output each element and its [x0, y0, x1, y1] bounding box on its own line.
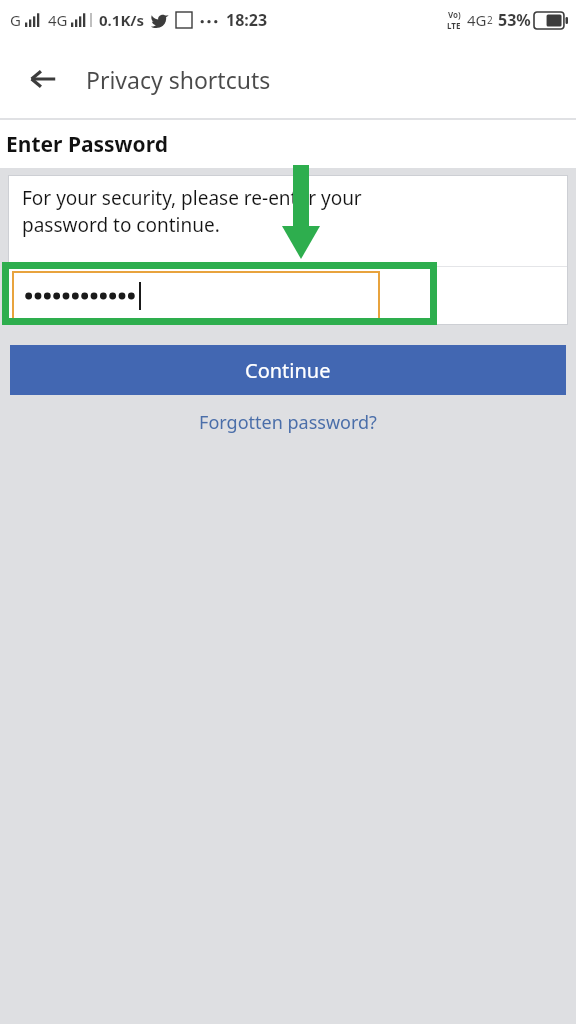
staticText: 0.1K/s	[99, 10, 145, 30]
staticText: 4G	[467, 10, 487, 30]
staticText: Vo)	[448, 9, 461, 20]
staticText: Privacy shortcuts	[86, 64, 271, 95]
button[interactable]: Forgotten password?	[0, 405, 576, 439]
staticText: G	[10, 10, 21, 30]
staticText: Continue	[245, 357, 331, 384]
button[interactable]: Continue	[10, 345, 566, 395]
staticText: LTE	[447, 20, 461, 31]
staticText: For your security, please re-enter your …	[22, 185, 362, 238]
button[interactable]: Password field	[12, 271, 380, 321]
staticText: Enter Password	[6, 130, 168, 159]
staticText: 4G	[48, 10, 68, 30]
button[interactable]: Back	[22, 58, 64, 100]
staticText: Forgotten password?	[199, 410, 377, 435]
staticText: 18:23	[226, 9, 268, 31]
staticText: 2	[487, 13, 493, 27]
staticText: 53%	[498, 9, 531, 31]
